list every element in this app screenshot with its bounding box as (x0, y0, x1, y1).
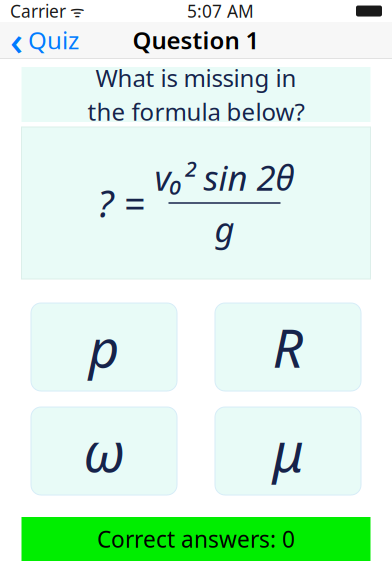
button[interactable]: μ (215, 407, 361, 495)
button[interactable]: R (215, 303, 361, 391)
staticText: the formula below? (87, 95, 304, 127)
staticText: ᯤ (66, 0, 85, 22)
staticText: ? = (97, 178, 144, 228)
staticText: What is missing in (95, 62, 296, 93)
button[interactable]: p (31, 303, 177, 391)
staticText: ‹ (10, 13, 23, 66)
staticText: Question 1 (132, 24, 259, 56)
button[interactable]: ‹ (0, 22, 89, 58)
staticText: μ (272, 416, 303, 486)
staticText: Carrier (10, 0, 66, 22)
button[interactable]: Correct answers: 0 (21, 517, 370, 561)
staticText: 5:07 AM (187, 0, 254, 22)
staticText: g (214, 206, 234, 252)
staticText: ω (83, 416, 125, 486)
staticText: Quiz (28, 24, 79, 56)
staticText: p (88, 312, 119, 382)
button[interactable]: ω (31, 407, 177, 495)
staticText: R (272, 312, 303, 382)
staticText: v₀² sin 2θ (154, 154, 294, 200)
staticText: Correct answers: 0 (97, 524, 295, 554)
